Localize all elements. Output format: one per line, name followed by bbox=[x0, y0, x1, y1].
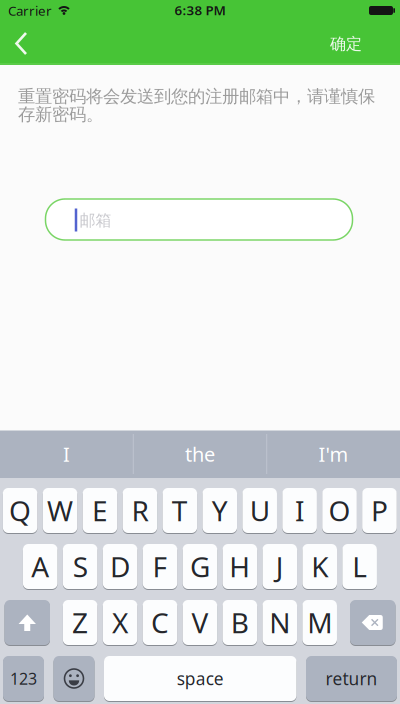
staticText: R bbox=[131, 492, 148, 529]
staticText: J bbox=[276, 548, 284, 585]
button[interactable]: 确定 bbox=[314, 23, 378, 65]
staticText: A bbox=[31, 548, 49, 585]
staticText: P bbox=[371, 492, 388, 529]
staticText: M bbox=[307, 604, 332, 641]
button[interactable]: V bbox=[183, 599, 217, 645]
staticText: L bbox=[352, 548, 367, 585]
staticText: Z bbox=[72, 604, 88, 641]
staticText: V bbox=[191, 604, 208, 641]
staticText: E bbox=[92, 492, 108, 529]
button[interactable]: C bbox=[143, 599, 177, 645]
button[interactable]: P bbox=[362, 487, 397, 533]
button[interactable]: I bbox=[1, 431, 131, 477]
staticText: N bbox=[269, 604, 290, 641]
staticText: O bbox=[328, 492, 350, 529]
button[interactable]: N bbox=[262, 599, 297, 645]
button[interactable]: 邮箱 bbox=[45, 199, 352, 240]
button[interactable]: G bbox=[183, 543, 217, 589]
staticText: 6:38 PM bbox=[174, 1, 225, 19]
button[interactable]: 123 bbox=[3, 655, 44, 701]
button[interactable]: S bbox=[63, 543, 97, 589]
button[interactable]: the bbox=[135, 431, 265, 477]
button[interactable]: U bbox=[242, 487, 277, 533]
button[interactable]: Back bbox=[0, 23, 44, 65]
button[interactable]: Y bbox=[202, 487, 237, 533]
button[interactable]: R bbox=[123, 487, 157, 533]
staticText: U bbox=[250, 492, 270, 529]
staticText: B bbox=[231, 604, 249, 641]
staticText: H bbox=[229, 548, 250, 585]
staticText: 确定 bbox=[330, 34, 362, 54]
staticText: C bbox=[151, 604, 169, 641]
staticText: 重置密码将会发送到您的注册邮箱中，请谨慎保 bbox=[18, 86, 375, 107]
staticText: D bbox=[110, 548, 130, 585]
button[interactable]: B bbox=[222, 599, 257, 645]
button[interactable]: Emoji bbox=[53, 655, 94, 701]
staticText: W bbox=[47, 492, 73, 529]
staticText: space bbox=[177, 667, 224, 690]
staticText: 邮箱 bbox=[79, 211, 111, 230]
button[interactable]: X bbox=[103, 599, 137, 645]
button[interactable]: A bbox=[23, 543, 57, 589]
staticText: K bbox=[311, 548, 328, 585]
button[interactable]: D bbox=[103, 543, 137, 589]
button[interactable]: T bbox=[162, 487, 197, 533]
staticText: X bbox=[112, 604, 128, 641]
staticText: return bbox=[325, 667, 377, 690]
button[interactable]: Shift bbox=[4, 599, 50, 645]
staticText: Q bbox=[9, 492, 31, 529]
staticText: S bbox=[73, 548, 88, 585]
button[interactable]: J bbox=[262, 543, 297, 589]
button[interactable]: Z bbox=[63, 599, 97, 645]
button[interactable]: O bbox=[322, 487, 357, 533]
button[interactable]: return bbox=[306, 655, 397, 701]
staticText: 存新密码。 bbox=[18, 104, 103, 125]
button[interactable]: Delete bbox=[350, 599, 395, 645]
staticText: T bbox=[172, 492, 188, 529]
button[interactable]: W bbox=[43, 487, 77, 533]
button[interactable]: H bbox=[223, 543, 257, 589]
staticText: 123 bbox=[10, 668, 37, 689]
staticText: I bbox=[63, 441, 70, 467]
button[interactable]: K bbox=[302, 543, 337, 589]
staticText: I bbox=[295, 492, 304, 529]
button[interactable]: I bbox=[282, 487, 317, 533]
button[interactable]: L bbox=[342, 543, 377, 589]
staticText: G bbox=[190, 548, 210, 585]
staticText: the bbox=[185, 441, 215, 467]
button[interactable]: Q bbox=[3, 487, 37, 533]
button[interactable]: F bbox=[143, 543, 177, 589]
button[interactable]: E bbox=[83, 487, 117, 533]
staticText: I'm bbox=[318, 441, 348, 467]
button[interactable]: space bbox=[104, 655, 296, 701]
staticText: Carrier bbox=[8, 2, 52, 19]
staticText: Y bbox=[212, 492, 228, 529]
button[interactable]: M bbox=[302, 599, 337, 645]
staticText: F bbox=[152, 548, 167, 585]
button[interactable]: I'm bbox=[268, 431, 398, 477]
